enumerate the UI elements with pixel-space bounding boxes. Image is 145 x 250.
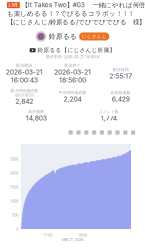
staticText: 18:00 [78,233,87,237]
staticText: 2:55:17 [109,72,132,80]
staticText: 6,429 [112,95,130,103]
staticText: 最大同時接続数 [10,88,38,93]
staticText: 1500 [10,185,18,189]
staticText: 【It Takes Two】#03 一緒にやれば何倍 [22,1,145,9]
button[interactable]: にじさんじ [79,32,109,40]
staticText: (03-21 18:52) [15,93,34,97]
staticText: 2000 [10,171,18,175]
staticText: LIVE [8,2,18,8]
staticText: 配信時間 [113,67,129,72]
button[interactable]: Chart tool [90,130,98,135]
staticText: 鈴原るる【にじさんじ所属】 [37,47,115,54]
button[interactable]: 鈴原るる【にじさんじ所属】 [30,47,115,54]
staticText: 鈴原るる [49,32,77,41]
staticText: 14,803 [26,114,47,122]
staticText: 18:56:00 [59,76,86,84]
button[interactable]: Chart tool [82,130,90,135]
staticText: 1000 [10,199,18,203]
button[interactable]: 鈴原るる [36,31,77,42]
staticText: 総視聴者数 [111,90,131,95]
staticText: 16:00:43 [11,76,38,84]
staticText: 配信終了 [64,63,80,68]
button[interactable]: Chart tool [98,130,106,135]
button[interactable]: Chart tool [114,130,121,135]
staticText: Mar 21, 2026 [62,237,83,242]
staticText: 平均同時接続数 [58,90,86,95]
staticText: 配信開始 [16,63,32,68]
staticText: コメント数 [99,109,119,114]
staticText: 【にじさんじ/鈴原るる/でびでびでびる 様】 [7,18,145,26]
staticText: 17:00 [43,233,52,237]
staticText: 2026-03-21 [54,68,91,76]
staticText: 高評価数 [28,109,44,114]
staticText: 最終更新: 2026-03-21 18:56:04 [46,54,99,59]
button[interactable]: Chart tool [106,130,114,135]
button[interactable]: Chart tool [67,130,75,135]
staticText: 0 [16,227,18,231]
button[interactable]: Chart tool [129,130,137,135]
button[interactable]: Chart tool [121,130,129,135]
staticText: 2500 [10,157,18,161]
staticText: 2,204 [63,95,81,103]
button[interactable]: Chart tool [75,130,82,135]
staticText: 500 [12,213,18,217]
staticText: 2026-03-21 [6,68,43,76]
staticText: も楽しめるる！？でびるるコラボッ！！！ [7,10,134,18]
staticText: 1,774 [101,114,117,122]
staticText: にじさんじ [82,33,107,39]
staticText: 2,842 [15,97,33,105]
